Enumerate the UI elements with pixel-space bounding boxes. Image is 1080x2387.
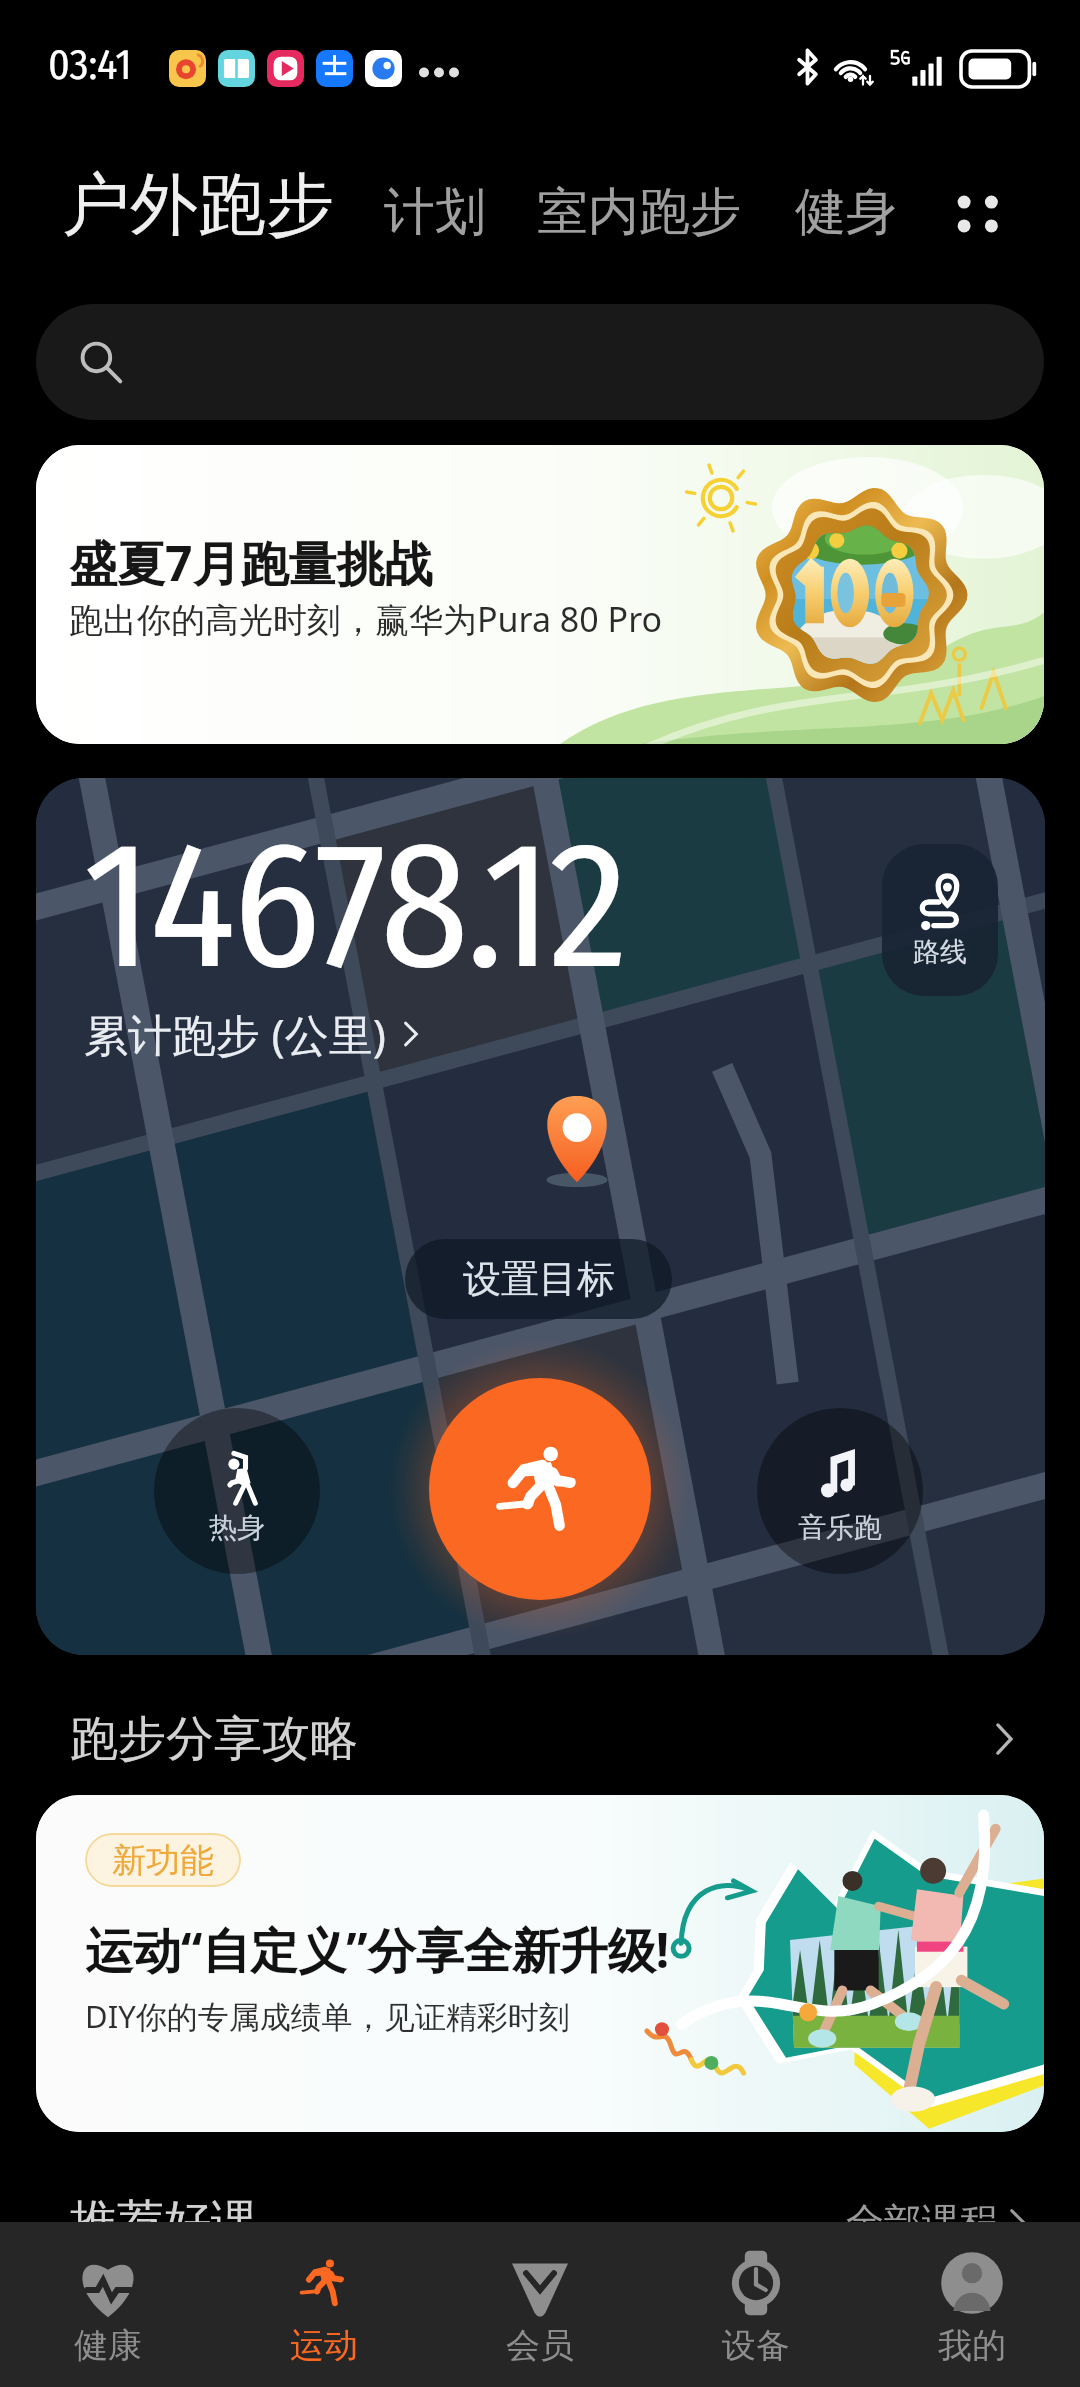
staticText: 音乐跑: [798, 1510, 882, 1545]
button[interactable]: 热身: [154, 1408, 320, 1574]
button[interactable]: More options: [930, 168, 1022, 260]
staticText: 计划: [384, 180, 486, 244]
button[interactable]: 设置目标: [405, 1239, 672, 1319]
staticText: 跑出你的高光时刻，赢华为Pura 80 Pro: [69, 596, 663, 642]
staticText: 推荐好课: [70, 2193, 258, 2252]
staticText: 设置目标: [463, 1255, 615, 1303]
staticText: 路线: [913, 935, 967, 969]
staticText: 全部课程: [846, 2198, 998, 2246]
staticText: 我的: [938, 2324, 1006, 2365]
staticText: 运动“自定义”分享全新升级!: [85, 1917, 670, 1983]
staticText: 新功能: [112, 1839, 214, 1882]
staticText: 室内跑步: [537, 180, 741, 244]
button[interactable]: 累计跑步 (公里): [84, 1004, 428, 1064]
staticText: 健身: [795, 180, 897, 244]
staticText: 03:41: [48, 40, 132, 90]
button[interactable]: Search: [36, 304, 1044, 420]
button[interactable]: 全部课程: [846, 2198, 1036, 2246]
button[interactable]: Start run: [429, 1378, 651, 1600]
staticText: 健康: [74, 2324, 142, 2365]
staticText: 运动: [290, 2324, 358, 2365]
button[interactable]: 健康: [0, 2222, 216, 2387]
button[interactable]: 计划: [384, 180, 486, 244]
button[interactable]: 运动: [216, 2222, 432, 2387]
button[interactable]: 会员: [432, 2222, 648, 2387]
staticText: 累计跑步 (公里): [84, 1004, 386, 1064]
button[interactable]: 跑步分享攻略: [0, 1655, 1080, 1795]
button[interactable]: 我的: [864, 2222, 1080, 2387]
button[interactable]: 音乐跑: [757, 1408, 923, 1574]
button[interactable]: 户外跑步: [62, 163, 334, 249]
staticText: 热身: [209, 1510, 265, 1545]
button[interactable]: 室内跑步: [537, 180, 741, 244]
button[interactable]: 新功能: [36, 1795, 1044, 2132]
staticText: 14678.12: [83, 800, 625, 1014]
staticText: 跑步分享攻略: [70, 1709, 358, 1769]
staticText: DIY你的专属成绩单，见证精彩时刻: [85, 1995, 570, 2037]
button[interactable]: 设备: [648, 2222, 864, 2387]
button[interactable]: 路线: [882, 844, 998, 996]
staticText: 设备: [722, 2324, 790, 2365]
staticText: 盛夏7月跑量挑战: [69, 530, 433, 596]
button[interactable]: 健身: [795, 180, 897, 244]
button[interactable]: 盛夏7月跑量挑战: [36, 445, 1044, 744]
staticText: 会员: [506, 2324, 574, 2365]
staticText: 户外跑步: [62, 163, 334, 249]
